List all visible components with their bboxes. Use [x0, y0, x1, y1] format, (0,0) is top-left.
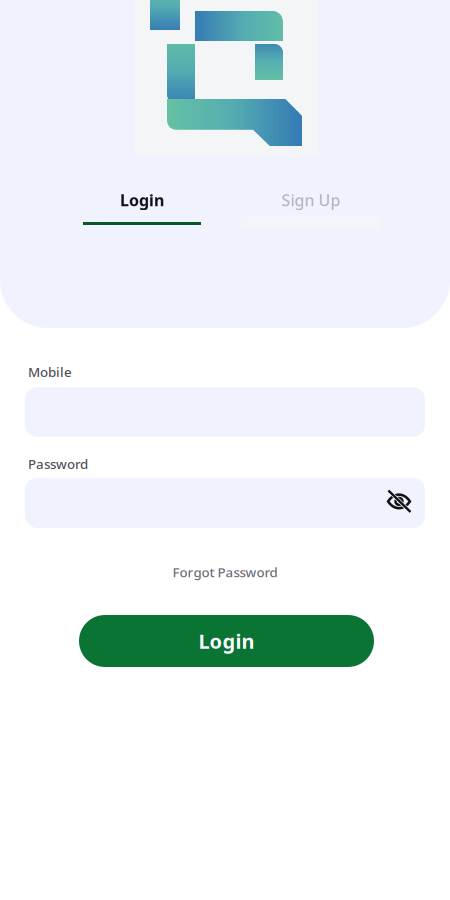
- staticText: Login: [120, 189, 164, 211]
- button[interactable]: Login: [62, 189, 222, 225]
- button[interactable]: Login: [79, 615, 374, 667]
- button[interactable]: Show password: [377, 479, 421, 523]
- button[interactable]: Forgot Password: [135, 560, 315, 584]
- staticText: Mobile: [28, 363, 72, 381]
- staticText: Sign Up: [281, 189, 340, 211]
- staticText: Login: [198, 628, 254, 654]
- staticText: Forgot Password: [172, 563, 277, 581]
- staticText: Password: [28, 455, 88, 473]
- button[interactable]: Sign Up: [236, 189, 386, 230]
